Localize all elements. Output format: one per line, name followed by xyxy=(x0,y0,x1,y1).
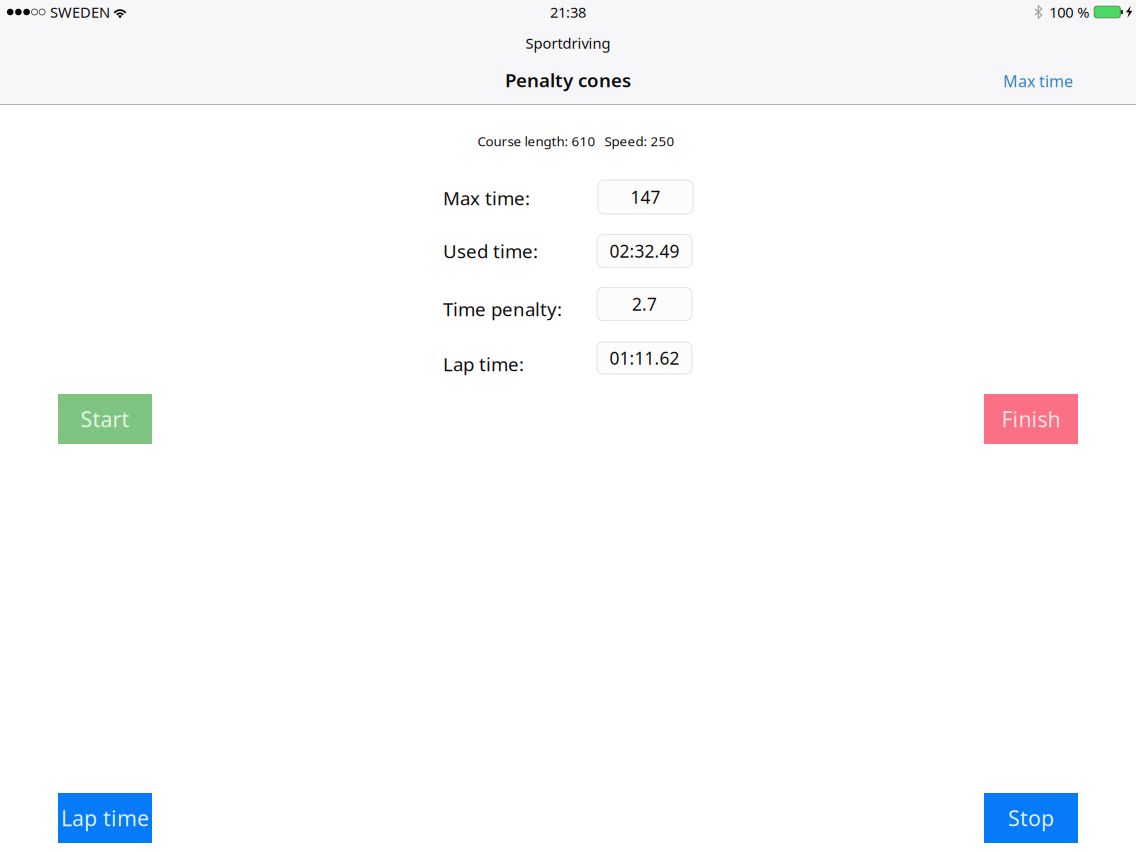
button[interactable]: Finish xyxy=(984,394,1078,444)
staticText: Lap time: xyxy=(443,352,524,376)
button[interactable]: Time penalty xyxy=(597,287,692,320)
staticText: 2.7 xyxy=(632,292,657,315)
button[interactable]: Stop xyxy=(984,793,1078,843)
button[interactable]: Max time xyxy=(598,180,693,214)
staticText: Max time xyxy=(1003,70,1073,92)
staticText: Max time: xyxy=(443,186,530,210)
staticText: 147 xyxy=(630,185,660,208)
staticText: 100 % xyxy=(1049,2,1089,22)
staticText: Sportdriving xyxy=(525,33,610,53)
staticText: SWEDEN xyxy=(50,2,110,22)
button[interactable]: Start xyxy=(58,394,152,444)
button[interactable]: Lap time xyxy=(597,342,692,374)
staticText: Start xyxy=(80,405,129,433)
staticText: Used time: xyxy=(443,239,538,263)
staticText: Penalty cones xyxy=(505,68,631,92)
button[interactable]: Used time xyxy=(597,234,692,267)
button[interactable]: Lap time xyxy=(58,793,152,843)
staticText: Course length: 610 Speed: 250 xyxy=(477,132,674,150)
staticText: Stop xyxy=(1008,804,1054,832)
staticText: 01:11.62 xyxy=(609,346,679,369)
staticText: Lap time xyxy=(61,804,149,832)
staticText: Finish xyxy=(1001,405,1060,433)
staticText: 02:32.49 xyxy=(609,239,679,262)
button[interactable]: Max time xyxy=(985,66,1073,96)
staticText: Time penalty: xyxy=(443,297,562,321)
staticText: 21:38 xyxy=(550,2,586,22)
